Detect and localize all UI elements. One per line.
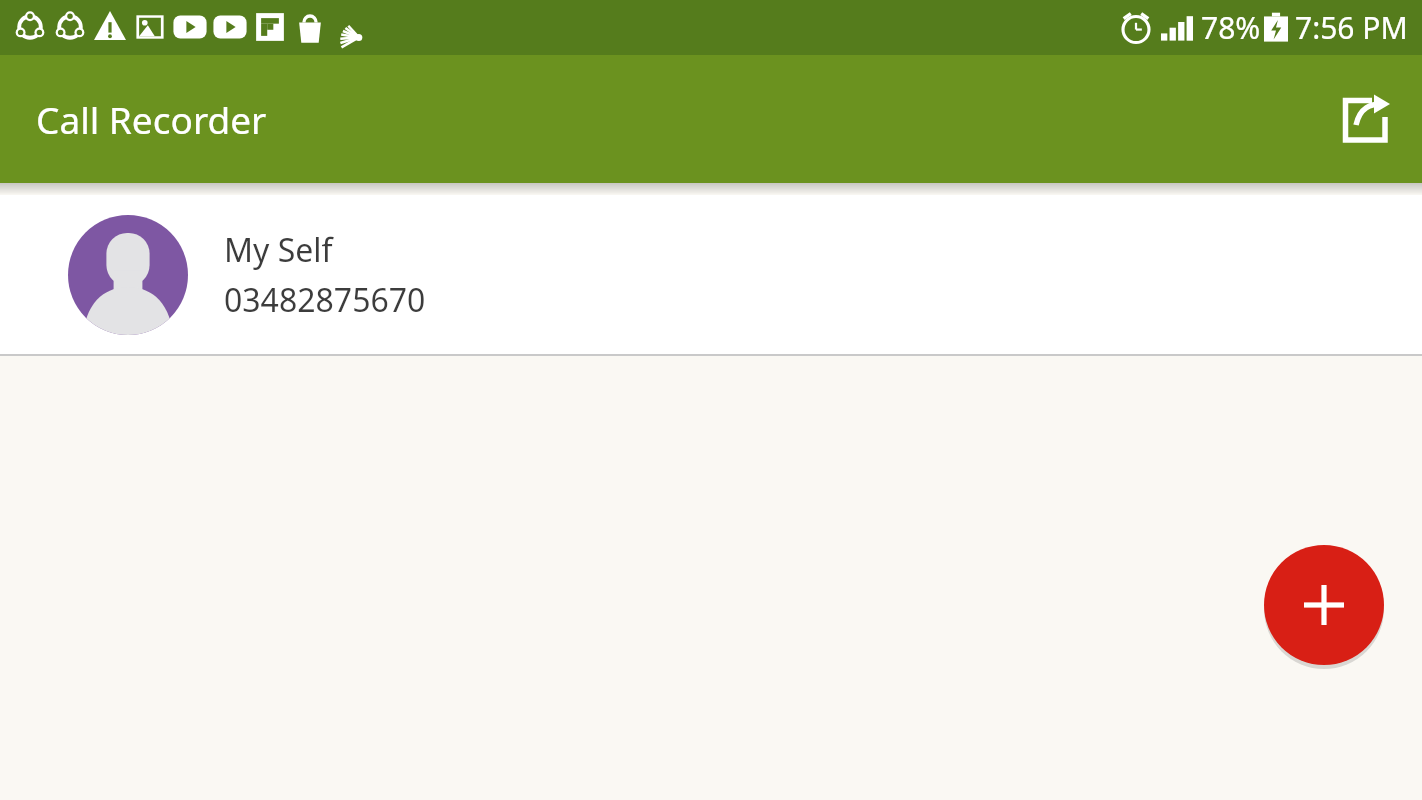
staticText: 78% [1201, 7, 1261, 48]
staticText: My Self [224, 228, 333, 272]
staticText: 7:56 PM [1295, 7, 1408, 48]
staticText: 03482875670 [224, 278, 426, 322]
staticText: Call Recorder [36, 94, 267, 144]
button[interactable]: Share [1330, 83, 1402, 155]
button[interactable]: Add recording [1264, 545, 1384, 665]
button[interactable]: My Self [0, 195, 1422, 354]
